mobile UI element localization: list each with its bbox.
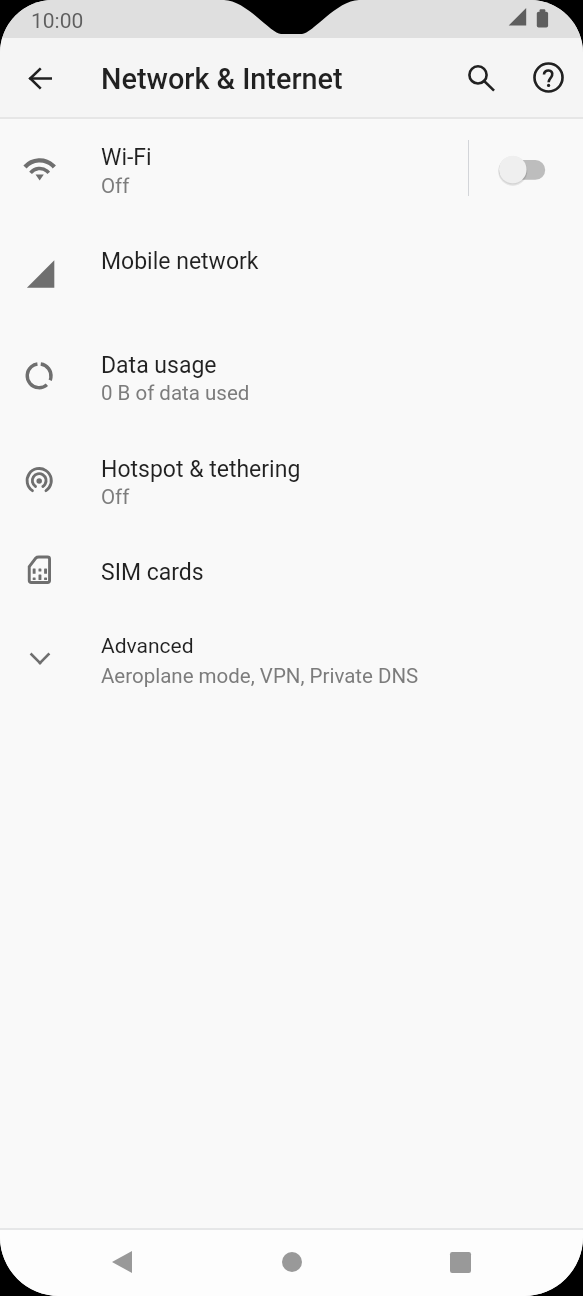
button[interactable] <box>0 325 583 428</box>
button[interactable]: Toggle Wi-Fi <box>486 145 556 193</box>
staticText: SIM cards <box>101 559 204 586</box>
staticText: Mobile network <box>101 248 259 275</box>
button[interactable] <box>0 428 583 525</box>
staticText: Network & Internet <box>101 62 343 96</box>
button[interactable]: Recent apps <box>420 1228 500 1296</box>
button[interactable] <box>0 614 583 703</box>
button[interactable]: Help <box>523 52 574 103</box>
button[interactable]: Back <box>82 1228 162 1296</box>
staticText: Off <box>101 485 130 509</box>
button[interactable] <box>0 525 583 614</box>
staticText: Off <box>101 174 130 198</box>
button[interactable] <box>0 221 583 325</box>
button[interactable]: Home <box>252 1228 332 1296</box>
button[interactable]: Search <box>452 52 503 103</box>
staticText: Hotspot & tethering <box>101 456 301 483</box>
staticText: Aeroplane mode, VPN, Private DNS <box>101 664 419 688</box>
button[interactable] <box>0 118 583 221</box>
staticText: 0 B of data used <box>101 381 250 405</box>
staticText: Data usage <box>101 352 217 379</box>
staticText: Advanced <box>101 634 194 659</box>
staticText: 10:00 <box>31 9 84 34</box>
button[interactable]: Navigate up <box>14 52 66 104</box>
staticText: Wi-Fi <box>101 144 152 171</box>
